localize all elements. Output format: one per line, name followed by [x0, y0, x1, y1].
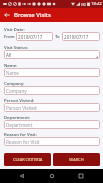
staticText: Name — [6, 70, 19, 76]
button[interactable]: Person Visited — [4, 103, 100, 112]
button[interactable]: Back — [0, 8, 14, 22]
staticText: Company: — [4, 81, 25, 87]
staticText: 2018/07/17 — [18, 34, 43, 40]
button[interactable]: 2018/07/17 — [62, 32, 100, 41]
staticText: Browse Visits — [14, 11, 51, 19]
button[interactable]: Back — [15, 169, 29, 183]
staticText: Department: — [4, 115, 31, 121]
staticText: SEARCH — [69, 157, 84, 162]
staticText: To — [55, 34, 60, 40]
button[interactable]: Company — [4, 86, 100, 95]
staticText: Name: — [4, 63, 18, 69]
button[interactable]: CLEAR CRITERIA — [4, 153, 51, 166]
staticText: Visit Status: — [4, 45, 28, 51]
button[interactable]: Department — [4, 120, 100, 129]
button[interactable]: All — [4, 50, 100, 59]
button[interactable]: Recent apps — [74, 169, 88, 183]
staticText: HD — [81, 2, 86, 7]
staticText: Department — [6, 122, 33, 128]
staticText: Person Visited: — [4, 98, 35, 104]
button[interactable]: 2018/07/17 — [16, 32, 53, 41]
staticText: All — [6, 52, 12, 58]
button[interactable]: Name — [4, 68, 100, 77]
staticText: Reason for Visit: — [4, 132, 37, 138]
staticText: 18:42 — [91, 1, 102, 7]
staticText: CLEAR CRITERIA — [13, 157, 43, 162]
staticText: Person Visited — [6, 105, 37, 111]
button[interactable]: Reason for Visit — [4, 137, 100, 146]
staticText: From — [4, 34, 15, 40]
button[interactable]: Home — [45, 169, 59, 183]
staticText: Reason for Visit — [6, 139, 40, 145]
button[interactable]: SEARCH — [53, 153, 100, 166]
staticText: 2018/07/17 — [64, 34, 89, 40]
staticText: Company — [6, 88, 27, 94]
staticText: Visit Date: — [4, 27, 25, 33]
